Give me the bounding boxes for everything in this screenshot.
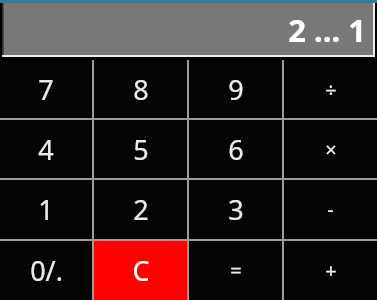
button[interactable]: -: [284, 180, 377, 239]
staticText: 4: [38, 131, 54, 168]
staticText: 9: [228, 71, 244, 108]
staticText: 8: [133, 71, 149, 108]
button[interactable]: 4: [0, 120, 92, 178]
button[interactable]: 3: [189, 180, 282, 239]
staticText: C: [132, 252, 150, 289]
staticText: 7: [38, 71, 54, 108]
staticText: 1: [38, 191, 54, 228]
staticText: 5: [133, 131, 149, 168]
staticText: =: [230, 257, 242, 284]
button[interactable]: 0/.: [0, 241, 92, 300]
button[interactable]: 5: [94, 120, 187, 178]
button[interactable]: C: [94, 241, 187, 300]
staticText: ÷: [325, 76, 337, 103]
button[interactable]: ÷: [284, 60, 377, 118]
button[interactable]: 1: [0, 180, 92, 239]
staticText: 0/.: [30, 252, 63, 289]
staticText: 6: [228, 131, 244, 168]
button[interactable]: 6: [189, 120, 282, 178]
button[interactable]: ×: [284, 120, 377, 178]
button[interactable]: =: [189, 241, 282, 300]
button[interactable]: 9: [189, 60, 282, 118]
staticText: 2 ... 1: [288, 9, 366, 51]
staticText: ×: [325, 136, 337, 163]
staticText: 3: [228, 191, 244, 228]
button[interactable]: 8: [94, 60, 187, 118]
button[interactable]: +: [284, 241, 377, 300]
button[interactable]: 2: [94, 180, 187, 239]
staticText: 2: [133, 191, 149, 228]
button[interactable]: 7: [0, 60, 92, 118]
staticText: +: [325, 257, 337, 284]
staticText: -: [327, 196, 334, 223]
button[interactable]: 2 ... 1: [2, 3, 375, 57]
